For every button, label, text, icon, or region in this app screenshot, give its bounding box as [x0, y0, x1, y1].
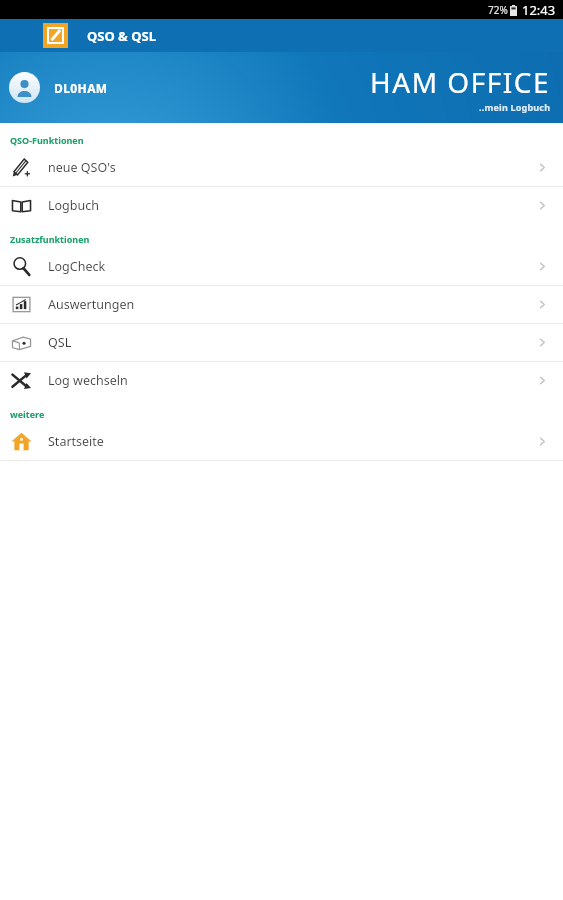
- staticText: DL0HAM: [54, 80, 108, 96]
- staticText: ..mein Logbuch: [479, 101, 551, 113]
- staticText: Log wechseln: [48, 372, 128, 389]
- staticText: 12:43: [522, 1, 556, 19]
- staticText: QSO-Funktionen: [10, 134, 84, 146]
- staticText: weitere: [10, 408, 45, 420]
- button[interactable]: QSO und QSL Logo: [43, 23, 68, 48]
- button[interactable]: LogCheck: [0, 248, 563, 285]
- staticText: Logbuch: [48, 197, 99, 214]
- button[interactable]: neue QSO's: [0, 149, 563, 186]
- staticText: Startseite: [48, 433, 104, 450]
- button[interactable]: Log wechseln: [0, 362, 563, 399]
- staticText: QSL: [48, 334, 72, 351]
- staticText: neue QSO's: [48, 159, 116, 176]
- staticText: LogCheck: [48, 258, 106, 275]
- button[interactable]: Auswertungen: [0, 286, 563, 323]
- button[interactable]: Logbuch: [0, 187, 563, 224]
- button[interactable]: Startseite: [0, 423, 563, 460]
- staticText: 72%: [488, 3, 508, 17]
- staticText: Auswertungen: [48, 296, 135, 313]
- staticText: Zusatzfunktionen: [10, 233, 90, 245]
- staticText: HAM OFFICE: [370, 63, 551, 101]
- button[interactable]: QSL: [0, 324, 563, 361]
- staticText: QSO & QSL: [87, 27, 156, 45]
